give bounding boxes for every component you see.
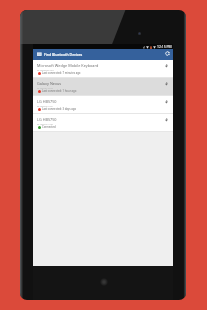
button[interactable]: Bluetooth — [162, 79, 171, 88]
staticText: Last connected: 1 hour ago — [42, 89, 77, 93]
staticText: LG HBS750 — [37, 117, 57, 122]
button[interactable]: Bluetooth — [162, 115, 171, 124]
staticText: Find Bluetooth Devices — [44, 52, 83, 57]
staticText: 20:16:D8:D3:C1:D4 — [37, 69, 54, 72]
button[interactable]: LG HBS750 — [33, 114, 173, 132]
staticText: Microsoft Wedge Mobile Keyboard — [37, 63, 99, 68]
staticText: 00:18:6B:47:11:0B — [37, 123, 53, 126]
staticText: Galaxy Nexus — [37, 81, 62, 86]
button[interactable]: Microsoft Wedge Mobile Keyboard — [33, 60, 173, 78]
staticText: 00:18:6B:47:11:0A — [37, 105, 53, 108]
staticText: Connected — [42, 125, 56, 129]
staticText: Last connected: 7 minutes ago — [42, 71, 81, 75]
button[interactable]: Galaxy Nexus — [33, 78, 173, 96]
button[interactable]: Home — [100, 278, 108, 286]
staticText: 12:15 PM — [157, 44, 172, 49]
button[interactable]: Bluetooth — [162, 97, 171, 106]
staticText: LG HBS750 — [37, 99, 57, 104]
button[interactable]: LG HBS750 — [33, 96, 173, 114]
button[interactable]: Refresh — [163, 49, 172, 58]
button[interactable]: Bluetooth — [162, 61, 171, 70]
staticText: 30:19:66:B1:2C:9E — [37, 87, 53, 90]
staticText: Last connected: 3 days ago — [42, 107, 77, 111]
